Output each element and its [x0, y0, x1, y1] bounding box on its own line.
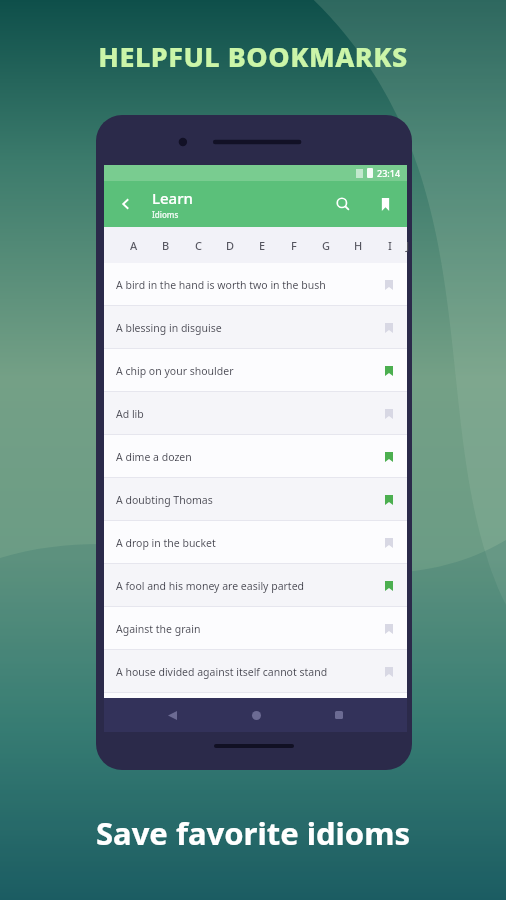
- staticText: A doubting Thomas: [116, 493, 213, 507]
- staticText: 23:14: [377, 167, 401, 179]
- staticText: G: [322, 238, 330, 253]
- button[interactable]: F: [278, 227, 310, 263]
- button[interactable]: A doubting Thomas: [104, 478, 407, 521]
- staticText: HELPFUL BOOKMARKS: [98, 38, 408, 75]
- staticText: Save favorite idioms: [96, 812, 410, 854]
- staticText: A house divided against itself cannot st…: [116, 665, 328, 679]
- staticText: E: [259, 238, 266, 253]
- staticText: H: [354, 238, 363, 253]
- staticText: D: [226, 238, 235, 253]
- button[interactable]: E: [246, 227, 278, 263]
- staticText: B: [162, 238, 170, 253]
- staticText: Ad lib: [116, 407, 144, 421]
- staticText: A: [130, 238, 138, 253]
- staticText: A blessing in disguise: [116, 321, 222, 335]
- staticText: A dime a dozen: [116, 450, 192, 464]
- button[interactable]: A fool and his money are easily parted: [104, 564, 407, 607]
- button[interactable]: I: [374, 227, 406, 263]
- staticText: C: [195, 238, 202, 253]
- button[interactable]: A drop in the bucket: [104, 521, 407, 564]
- button[interactable]: A house divided against itself cannot st…: [104, 650, 407, 693]
- button[interactable]: A bird in the hand is worth two in the b…: [104, 263, 407, 306]
- staticText: A chip on your shoulder: [116, 364, 234, 378]
- button[interactable]: Ad lib: [104, 392, 407, 435]
- button[interactable]: Search: [329, 190, 357, 218]
- button[interactable]: Against the grain: [104, 607, 407, 650]
- button[interactable]: C: [182, 227, 214, 263]
- button[interactable]: A dime a dozen: [104, 435, 407, 478]
- button[interactable]: J: [406, 227, 407, 263]
- button[interactable]: Back: [110, 188, 142, 220]
- button[interactable]: H: [342, 227, 374, 263]
- staticText: A drop in the bucket: [116, 536, 216, 550]
- button[interactable]: A: [118, 227, 150, 263]
- button[interactable]: A blessing in disguise: [104, 306, 407, 349]
- staticText: Learn: [152, 188, 193, 208]
- staticText: A bird in the hand is worth two in the b…: [116, 278, 326, 292]
- button[interactable]: A chip on your shoulder: [104, 349, 407, 392]
- staticText: Against the grain: [116, 622, 201, 636]
- button[interactable]: Back: [157, 700, 187, 730]
- button[interactable]: Recents: [324, 700, 354, 730]
- staticText: I: [388, 238, 392, 253]
- staticText: F: [291, 238, 297, 253]
- button[interactable]: Bookmarks: [371, 190, 399, 218]
- button[interactable]: B: [150, 227, 182, 263]
- button[interactable]: Home: [241, 700, 271, 730]
- staticText: J: [406, 238, 407, 253]
- staticText: A fool and his money are easily parted: [116, 579, 305, 593]
- staticText: Idioms: [152, 209, 179, 220]
- button[interactable]: D: [214, 227, 246, 263]
- button[interactable]: G: [310, 227, 342, 263]
